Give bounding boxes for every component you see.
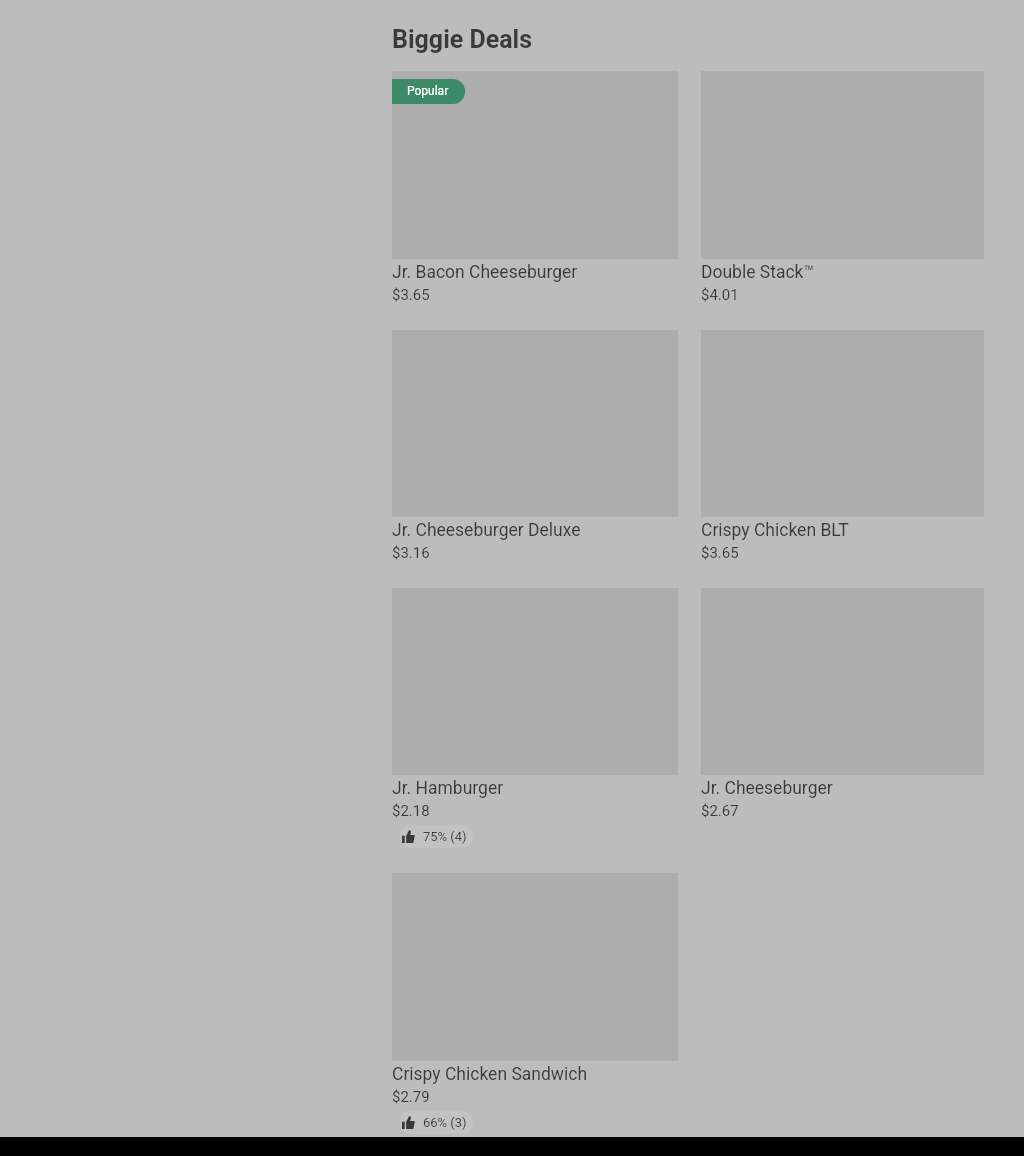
button[interactable]: Rating 75% (4) (400, 825, 473, 848)
staticText: $3.65 (701, 544, 739, 562)
button[interactable]: Jr. Bacon Cheeseburger, $3.65 (392, 71, 678, 304)
staticText: $3.16 (392, 544, 430, 562)
staticText: $4.01 (701, 286, 739, 304)
button[interactable]: Jr. Cheeseburger, $2.67 (701, 588, 984, 820)
staticText: Biggie Deals (392, 25, 533, 54)
button[interactable]: Jr. Cheeseburger Deluxe, $3.16 (392, 330, 678, 562)
staticText: 66% (3) (423, 1115, 467, 1130)
staticText: Jr. Hamburger (392, 778, 504, 799)
button[interactable]: Double Stack™, $4.01 (701, 71, 984, 304)
staticText: 75% (4) (423, 829, 467, 844)
button[interactable]: Crispy Chicken BLT, $3.65 (701, 330, 984, 562)
staticText: $2.67 (701, 802, 739, 820)
staticText: Crispy Chicken BLT (701, 520, 849, 541)
button[interactable]: Jr. Hamburger, $2.18 (392, 588, 678, 848)
button[interactable]: Crispy Chicken Sandwich, $2.79 (392, 873, 678, 1134)
staticText: Crispy Chicken Sandwich (392, 1064, 588, 1085)
staticText: $2.18 (392, 802, 430, 820)
staticText: Popular (407, 84, 449, 98)
staticText: $3.65 (392, 286, 430, 304)
staticText: $2.79 (392, 1088, 430, 1106)
button[interactable]: Rating 66% (3) (400, 1111, 473, 1134)
staticText: Jr. Cheeseburger Deluxe (392, 520, 581, 541)
staticText: Double Stack™ (701, 262, 815, 283)
staticText: Jr. Bacon Cheeseburger (392, 262, 578, 283)
staticText: Jr. Cheeseburger (701, 778, 833, 799)
